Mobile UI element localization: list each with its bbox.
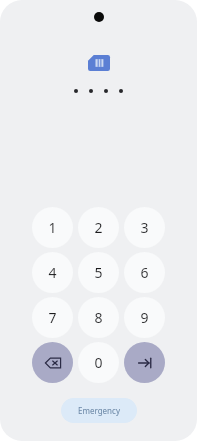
button[interactable]: 3 — [124, 207, 165, 248]
button[interactable]: Backspace — [32, 342, 73, 383]
staticText: 7 — [48, 308, 57, 327]
button[interactable]: 4 — [32, 252, 73, 293]
staticText: 0 — [94, 353, 103, 372]
staticText: 5 — [94, 263, 103, 282]
staticText: 8 — [94, 308, 103, 327]
button[interactable]: 2 — [78, 207, 119, 248]
staticText: 1 — [48, 218, 57, 237]
button[interactable]: 1 — [32, 207, 73, 248]
button[interactable]: 8 — [78, 297, 119, 338]
button[interactable]: 6 — [124, 252, 165, 293]
button[interactable]: Enter — [124, 342, 165, 383]
staticText: 3 — [140, 218, 149, 237]
other: SIM card — [88, 55, 110, 71]
button[interactable]: Emergency — [61, 398, 137, 423]
staticText: 9 — [140, 308, 149, 327]
staticText: Emergency — [78, 405, 120, 416]
staticText: 6 — [140, 263, 149, 282]
button[interactable]: 0 — [78, 342, 119, 383]
button[interactable]: 5 — [78, 252, 119, 293]
button[interactable]: 9 — [124, 297, 165, 338]
button[interactable]: 7 — [32, 297, 73, 338]
staticText: 2 — [94, 218, 103, 237]
staticText: 4 — [48, 263, 57, 282]
